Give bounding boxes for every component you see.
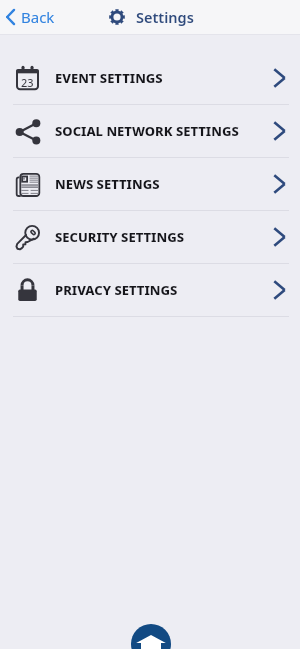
button[interactable]: SOCIAL NETWORK SETTINGS (0, 105, 300, 157)
staticText: NEWS SETTINGS (55, 175, 160, 193)
button[interactable]: 23 (0, 52, 300, 104)
staticText: Back (21, 7, 55, 27)
staticText: SOCIAL NETWORK SETTINGS (55, 122, 239, 140)
staticText: Settings (136, 7, 194, 27)
staticText: EVENT SETTINGS (55, 69, 163, 87)
staticText: PRIVACY SETTINGS (55, 281, 178, 299)
button[interactable]: SECURITY SETTINGS (0, 211, 300, 263)
button[interactable]: Home (131, 624, 171, 649)
staticText: 23 (21, 75, 34, 90)
staticText: SECURITY SETTINGS (55, 228, 184, 246)
button[interactable]: PRIVACY SETTINGS (0, 264, 300, 316)
button[interactable]: NEWS SETTINGS (0, 158, 300, 210)
button[interactable]: Back (6, 0, 55, 34)
